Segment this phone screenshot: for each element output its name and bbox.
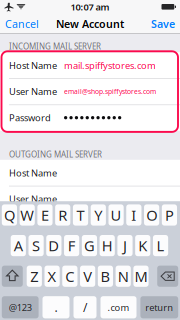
staticText: D <box>48 236 59 255</box>
staticText: 10:07 am <box>70 1 109 13</box>
button[interactable]: U <box>108 204 124 226</box>
staticText: A <box>14 236 23 255</box>
staticText: Y <box>94 205 102 225</box>
staticText: User Name <box>9 193 57 205</box>
staticText: L <box>156 236 164 255</box>
staticText: O <box>146 205 157 225</box>
staticText: K <box>138 236 147 255</box>
staticText: .com <box>107 301 129 313</box>
staticText: OUTGOING MAIL SERVER <box>9 149 102 160</box>
button[interactable]: .com <box>100 296 136 318</box>
staticText: I <box>131 205 136 225</box>
staticText: / <box>83 299 87 315</box>
staticText: INCOMING MAIL SERVER <box>9 41 101 52</box>
button[interactable]: N <box>116 266 131 287</box>
staticText: T <box>76 205 84 225</box>
staticText: P <box>165 205 174 225</box>
staticText: B <box>100 266 110 286</box>
button[interactable]: T <box>73 204 88 226</box>
button[interactable]: Z <box>27 266 42 287</box>
button[interactable]: F <box>64 235 79 256</box>
staticText: S <box>32 236 40 255</box>
staticText: @123 <box>9 301 32 313</box>
button[interactable]: X <box>44 266 60 287</box>
staticText: mail.spiffystores.com <box>64 59 156 71</box>
staticText: V <box>83 266 92 286</box>
staticText: C <box>65 266 74 286</box>
staticText: N <box>118 266 129 286</box>
staticText: Host Name <box>9 167 57 179</box>
button[interactable]: O <box>144 204 159 226</box>
button[interactable]: Host Name <box>9 160 180 186</box>
button[interactable]: I <box>126 204 141 226</box>
button[interactable]: Shift <box>2 266 23 287</box>
button[interactable]: B <box>98 266 113 287</box>
staticText: return <box>145 301 173 313</box>
staticText: F <box>68 236 76 255</box>
button[interactable]: / <box>73 296 96 318</box>
staticText: . <box>54 299 57 315</box>
button[interactable]: Host Name <box>9 52 180 78</box>
staticText: email@shop.spiffystores.com <box>64 87 156 96</box>
button[interactable]: K <box>135 235 150 256</box>
button[interactable]: Y <box>91 204 106 226</box>
button[interactable]: G <box>82 235 97 256</box>
button[interactable]: . <box>42 296 69 318</box>
button[interactable]: C <box>62 266 77 287</box>
button[interactable]: L <box>153 235 168 256</box>
button[interactable]: J <box>117 235 133 256</box>
button[interactable]: User Name <box>9 186 180 212</box>
button[interactable]: M <box>133 266 149 287</box>
staticText: U <box>111 205 122 225</box>
staticText: M <box>134 266 147 286</box>
staticText: Save <box>151 17 175 31</box>
staticText: X <box>48 266 57 286</box>
button[interactable]: R <box>55 204 70 226</box>
button[interactable]: S <box>28 235 44 256</box>
button[interactable]: V <box>80 266 95 287</box>
staticText: User Name <box>9 85 57 98</box>
button[interactable]: H <box>100 235 115 256</box>
button[interactable]: E <box>37 204 53 226</box>
button[interactable]: Delete <box>157 266 178 287</box>
staticText: Q <box>4 205 15 225</box>
staticText: New Account <box>56 17 124 31</box>
button[interactable]: Q <box>2 204 17 226</box>
button[interactable]: User Name <box>9 78 180 105</box>
button[interactable]: Save <box>147 14 175 34</box>
button[interactable]: @123 <box>2 296 39 318</box>
button[interactable]: Cancel <box>5 14 41 34</box>
staticText: Cancel <box>5 17 39 31</box>
staticText: Host Name <box>9 59 57 71</box>
staticText: Password <box>9 111 51 124</box>
button[interactable]: return <box>140 296 178 318</box>
staticText: W <box>20 205 34 225</box>
button[interactable]: Password <box>9 105 180 131</box>
button[interactable]: D <box>46 235 61 256</box>
staticText: R <box>58 205 67 225</box>
button[interactable]: P <box>162 204 177 226</box>
staticText: J <box>123 236 127 255</box>
staticText: H <box>102 236 113 255</box>
staticText: G <box>84 236 95 255</box>
staticText: Z <box>30 266 38 286</box>
button[interactable]: A <box>11 235 26 256</box>
staticText: E <box>41 205 49 225</box>
button[interactable]: W <box>20 204 35 226</box>
